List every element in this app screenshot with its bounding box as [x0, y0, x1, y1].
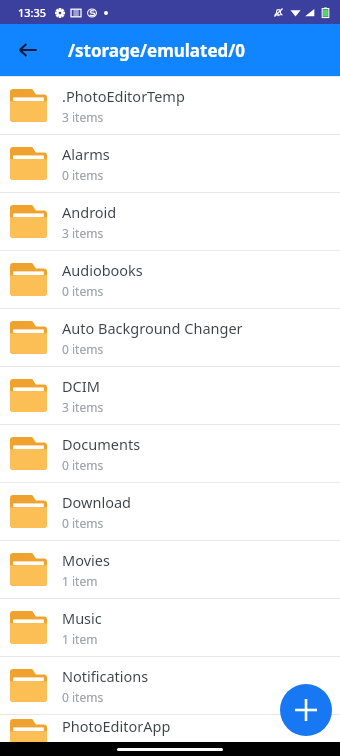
- staticText: .PhotoEditorTemp: [62, 86, 185, 106]
- staticText: 1 item: [62, 631, 98, 647]
- button[interactable]: Documents: [0, 425, 340, 482]
- button[interactable]: Alarms: [0, 135, 340, 192]
- button[interactable]: Android: [0, 193, 340, 250]
- staticText: 13:35: [18, 5, 47, 20]
- button[interactable]: PhotoEditorApp: [0, 715, 340, 756]
- staticText: Movies: [62, 550, 110, 570]
- staticText: 0 items: [62, 515, 104, 531]
- staticText: Alarms: [62, 144, 110, 164]
- staticText: Music: [62, 608, 102, 628]
- staticText: 0 items: [62, 341, 104, 357]
- staticText: 0 items: [62, 283, 104, 299]
- button[interactable]: Music: [0, 599, 340, 656]
- staticText: Notifications: [62, 666, 149, 686]
- staticText: Android: [62, 202, 117, 222]
- staticText: 1 item: [62, 573, 98, 589]
- button[interactable]: Notifications: [0, 657, 340, 714]
- staticText: Auto Background Changer: [62, 318, 243, 338]
- button[interactable]: Audiobooks: [0, 251, 340, 308]
- button[interactable]: Auto Background Changer: [0, 309, 340, 366]
- staticText: 3 items: [62, 109, 104, 125]
- staticText: 0 items: [62, 457, 104, 473]
- staticText: Documents: [62, 434, 141, 454]
- button[interactable]: Download: [0, 483, 340, 540]
- staticText: Audiobooks: [62, 260, 143, 280]
- staticText: Download: [62, 492, 131, 512]
- button[interactable]: Back: [10, 32, 46, 68]
- button[interactable]: Add: [280, 684, 332, 736]
- staticText: DCIM: [62, 376, 100, 396]
- staticText: 3 items: [62, 399, 104, 415]
- staticText: PhotoEditorApp: [62, 716, 171, 736]
- button[interactable]: Movies: [0, 541, 340, 598]
- staticText: 0 items: [62, 689, 104, 705]
- button[interactable]: .PhotoEditorTemp: [0, 77, 340, 134]
- staticText: 0 items: [62, 167, 104, 183]
- button[interactable]: DCIM: [0, 367, 340, 424]
- staticText: /storage/emulated/0: [68, 39, 246, 62]
- staticText: 2 items: [62, 739, 104, 755]
- staticText: 3 items: [62, 225, 104, 241]
